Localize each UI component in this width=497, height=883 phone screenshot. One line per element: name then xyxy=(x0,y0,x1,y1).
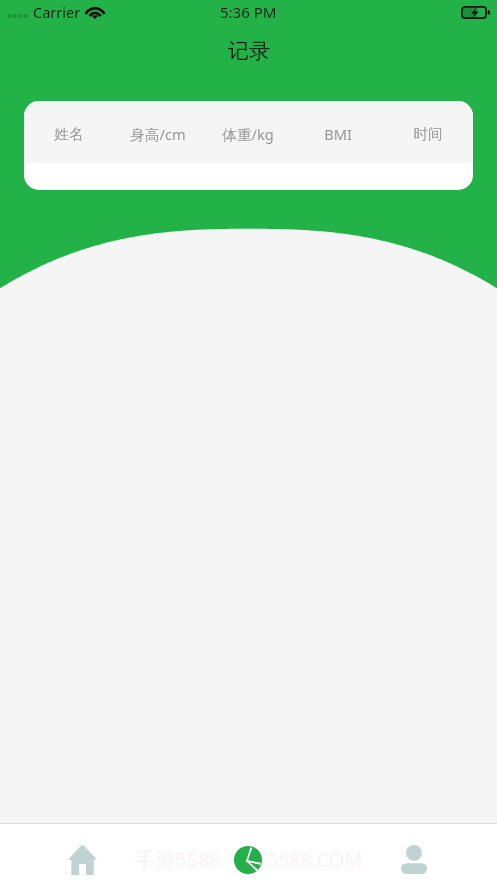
button[interactable]: 体重/kg xyxy=(203,124,293,144)
other: Wi-Fi xyxy=(85,6,105,19)
button[interactable]: 身高/cm xyxy=(113,124,203,144)
staticText: BMI xyxy=(324,124,352,144)
other: Battery charging xyxy=(461,6,491,19)
staticText: 身高/cm xyxy=(130,124,186,144)
staticText: 姓名 xyxy=(54,125,84,143)
button[interactable]: Records xyxy=(165,836,331,883)
button[interactable]: Profile xyxy=(331,836,497,883)
staticText: Carrier xyxy=(33,2,81,22)
button[interactable]: 时间 xyxy=(383,125,473,143)
other: Signal strength xyxy=(7,13,29,19)
button[interactable]: Home xyxy=(0,836,165,883)
button[interactable]: BMI xyxy=(293,124,383,144)
staticText: 体重/kg xyxy=(222,124,274,144)
staticText: 手游5588 · MX5588.COM xyxy=(135,846,363,873)
staticText: 时间 xyxy=(413,125,443,143)
staticText: 5:36 PM xyxy=(220,2,277,22)
button[interactable]: 姓名 xyxy=(24,125,113,143)
staticText: 记录 xyxy=(228,38,270,64)
